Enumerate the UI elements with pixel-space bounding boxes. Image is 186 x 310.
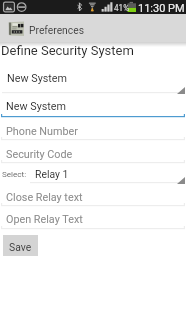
button[interactable] xyxy=(0,14,186,42)
button[interactable]: Save xyxy=(3,235,38,256)
staticText: 41% xyxy=(114,3,130,13)
staticText: New System xyxy=(6,100,67,113)
staticText: Define Security System xyxy=(1,43,134,58)
staticText: Relay 1 xyxy=(35,168,69,180)
staticText: Preferences xyxy=(29,24,84,36)
staticText: Phone Number xyxy=(6,125,78,138)
staticText: Select: xyxy=(2,169,27,178)
staticText: Save xyxy=(9,241,32,253)
staticText: Close Relay text xyxy=(6,191,83,204)
staticText: 11:30 PM xyxy=(138,2,185,15)
staticText: Open Relay Text xyxy=(6,213,83,226)
staticText: New System xyxy=(7,72,68,85)
staticText: Security Code xyxy=(6,148,73,161)
